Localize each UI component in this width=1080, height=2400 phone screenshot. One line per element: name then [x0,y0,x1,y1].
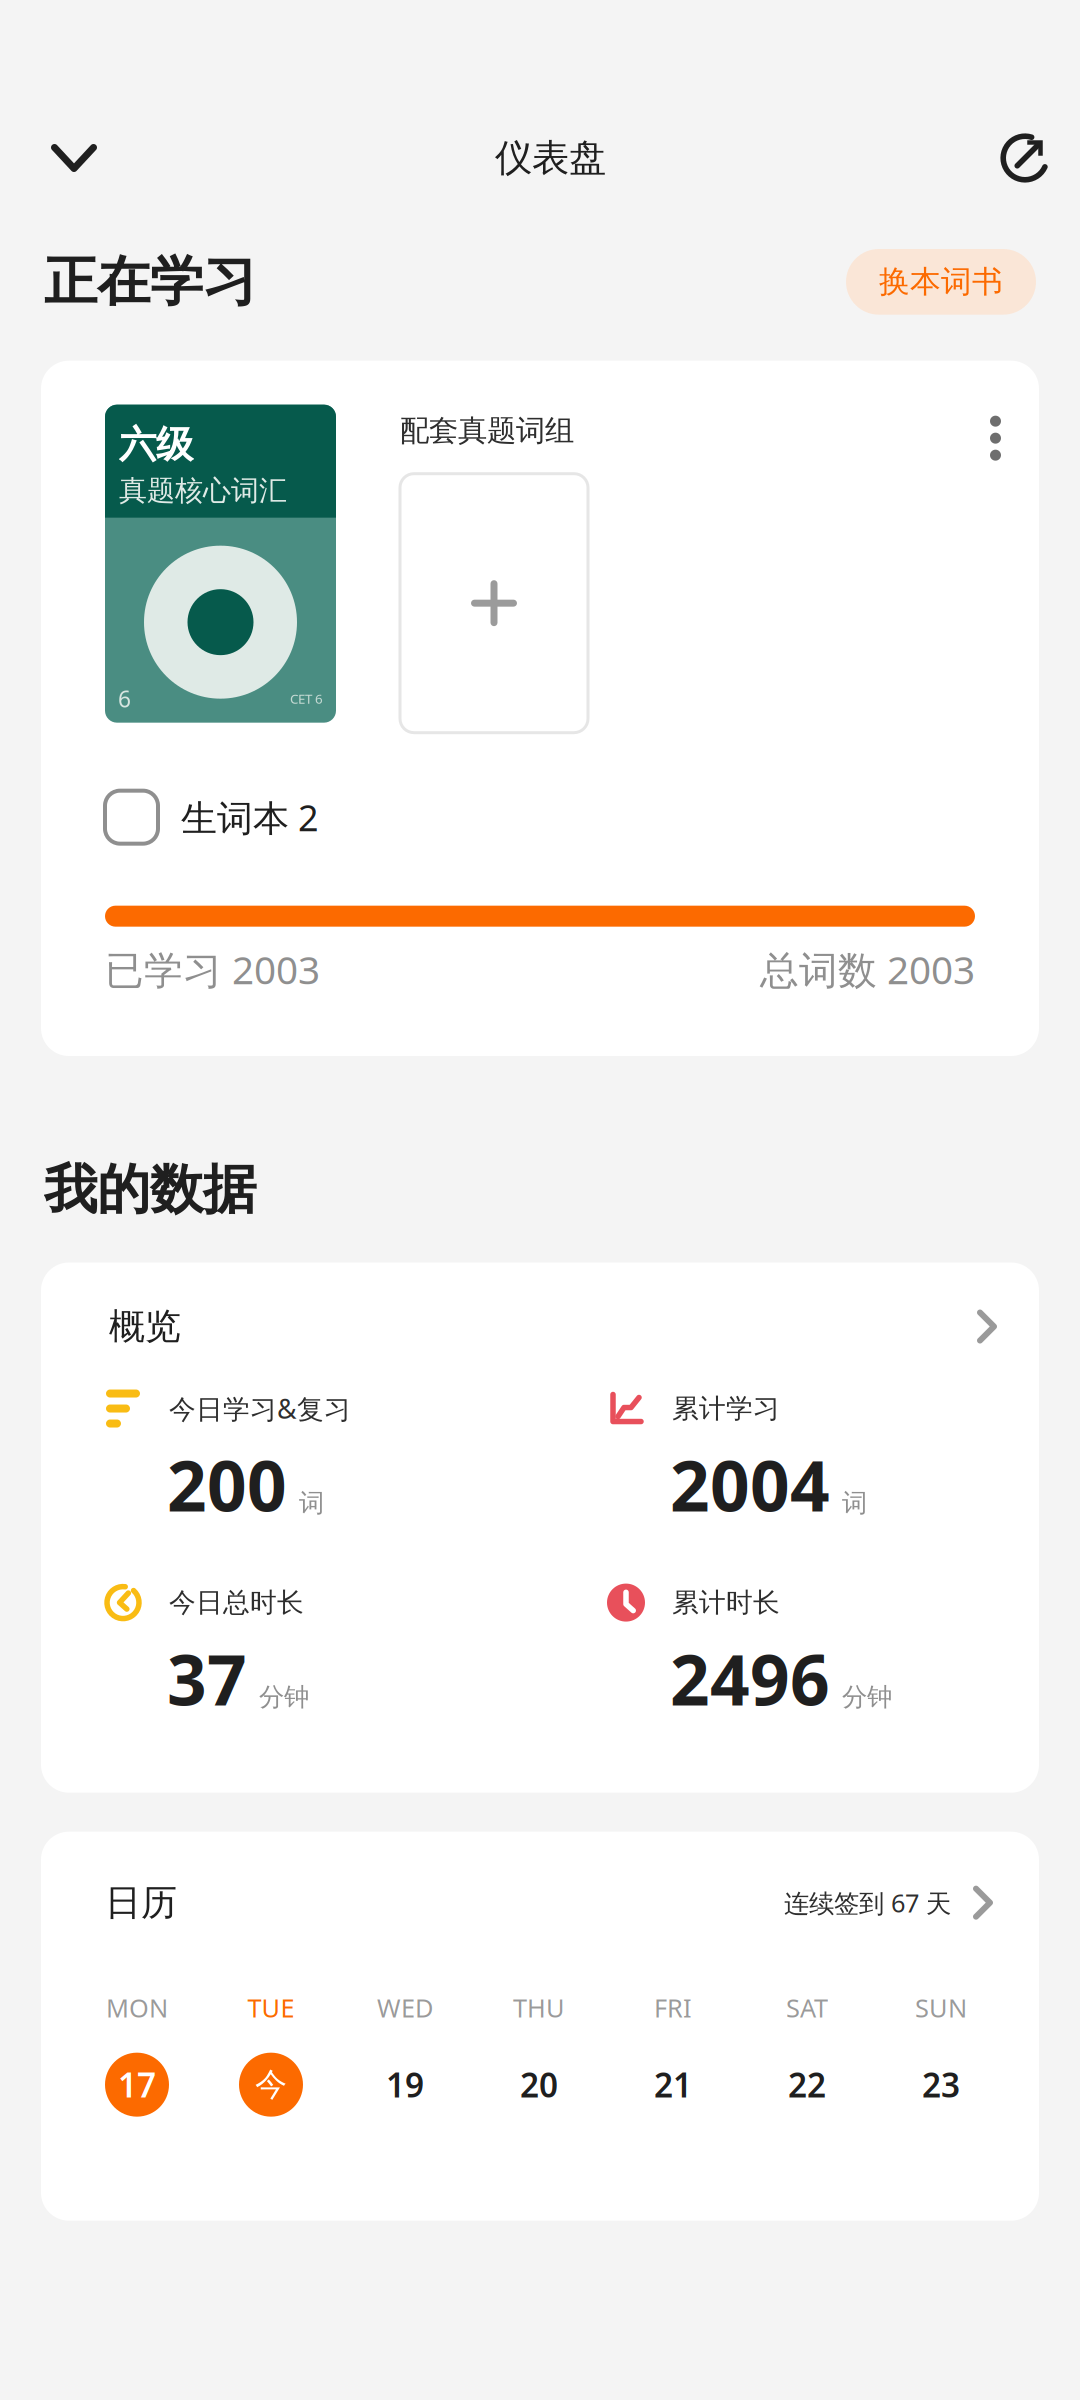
staticText: 配套真题词组 [400,413,574,449]
staticText: 日历 [105,1881,177,1925]
staticText: 今 [255,2065,287,2104]
staticText: THU [513,1991,565,2024]
staticText: 20 [520,2062,558,2107]
staticText: SUN [915,1991,967,2024]
staticText: 21 [654,2062,692,2107]
button[interactable]: 换本词书 [846,249,1036,315]
staticText: 真题核心词汇 [119,473,287,508]
button[interactable]: 概览 [41,1262,1039,1793]
staticText: 已学习 2003 [105,944,320,995]
staticText: 23 [922,2062,960,2107]
staticText: 词 [842,1487,867,1519]
staticText: 37 [167,1633,247,1725]
staticText: MON [106,1991,168,2024]
staticText: 2004 [670,1438,830,1531]
button[interactable]: 日历 [41,1883,1039,1923]
staticText: 总词数 2003 [760,944,975,995]
staticText: 我的数据 [44,1157,256,1222]
staticText: 2496 [670,1633,830,1725]
staticText: 仪表盘 [495,135,606,181]
staticText: 17 [118,2062,156,2107]
staticText: 概览 [109,1304,181,1349]
staticText: 19 [386,2062,424,2107]
button[interactable]: Add word group [400,474,588,733]
staticText: 连续签到 67 天 [784,1886,951,1919]
staticText: 累计学习 [672,1392,780,1425]
button[interactable]: Collapse [51,114,143,202]
button[interactable]: More options [990,416,1001,488]
staticText: WED [377,1991,433,2024]
staticText: FRI [654,1991,692,2024]
staticText: 生词本 2 [181,793,319,841]
button[interactable]: 生词本 2 [105,728,1001,844]
staticText: 今日总时长 [169,1586,304,1619]
staticText: CET 6 [290,690,323,707]
staticText: TUE [247,1991,294,2024]
button[interactable]: Share [958,114,1050,202]
staticText: 累计时长 [672,1586,780,1619]
staticText: 今日学习&复习 [169,1391,351,1426]
staticText: 分钟 [259,1681,309,1713]
staticText: 200 [167,1438,287,1531]
staticText: 正在学习 [44,249,256,315]
staticText: SAT [786,1991,828,2024]
staticText: 换本词书 [879,263,1003,301]
staticText: 分钟 [842,1681,892,1713]
staticText: 6 [118,684,131,714]
button[interactable]: 六级 [105,405,336,723]
staticText: 词 [299,1487,324,1519]
staticText: 22 [788,2062,826,2107]
staticText: 六级 [119,422,193,468]
